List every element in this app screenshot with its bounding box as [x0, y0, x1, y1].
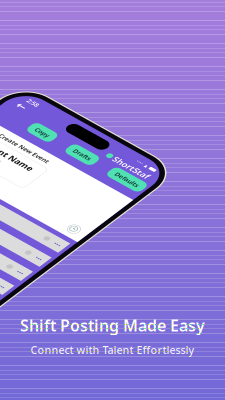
staticText: Create New Event [94, 219, 222, 238]
staticText: 2:58 [66, 105, 94, 125]
staticText: Copy [136, 160, 171, 180]
staticText: Shift Posting Made Easy [20, 315, 205, 336]
staticText: ← [59, 124, 80, 152]
button[interactable]: Copy [122, 153, 185, 187]
staticText: Connect with Talent Effortlessly [30, 343, 194, 357]
button[interactable]: Back [58, 127, 82, 149]
